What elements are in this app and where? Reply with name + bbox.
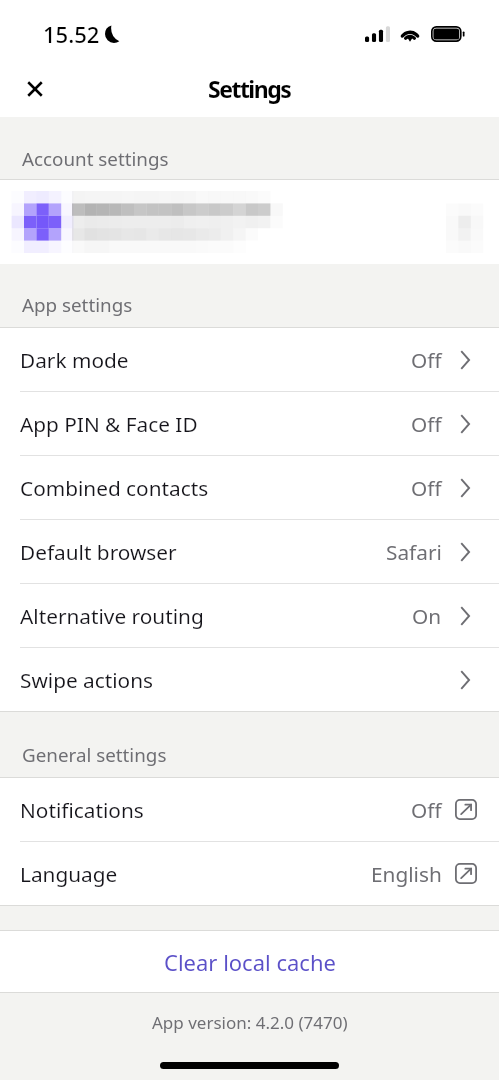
staticText: Notifications — [20, 796, 144, 824]
button[interactable]: Language — [0, 842, 499, 905]
staticText: Account settings — [22, 146, 169, 172]
button[interactable]: Swipe actions — [0, 648, 499, 711]
staticText: Off — [411, 474, 442, 502]
staticText: App PIN & Face ID — [20, 410, 198, 438]
staticText: App version: 4.2.0 (7470) — [152, 1011, 348, 1034]
staticText: Combined contacts — [20, 474, 209, 502]
staticText: Language — [20, 860, 118, 888]
staticText: Clear local cache — [164, 947, 336, 977]
button[interactable]: Combined contacts — [0, 456, 499, 519]
button[interactable] — [0, 180, 499, 264]
staticText: Off — [411, 796, 442, 824]
staticText: Off — [411, 346, 442, 374]
staticText: On — [412, 602, 442, 630]
staticText: General settings — [22, 742, 167, 768]
staticText: Alternative routing — [20, 602, 204, 630]
staticText: Dark mode — [20, 346, 129, 374]
staticText: 15.52 — [43, 19, 100, 49]
staticText: Swipe actions — [20, 666, 153, 694]
button[interactable]: Dark mode — [0, 328, 499, 391]
button[interactable]: Close — [17, 71, 53, 107]
button[interactable]: Notifications — [0, 778, 499, 841]
button[interactable]: App PIN & Face ID — [0, 392, 499, 455]
staticText: App settings — [22, 292, 133, 318]
button[interactable]: Clear local cache — [0, 931, 499, 992]
staticText: Settings — [208, 73, 291, 104]
staticText: English — [371, 860, 442, 888]
staticText: Safari — [386, 538, 442, 566]
button[interactable]: Default browser — [0, 520, 499, 583]
staticText: Default browser — [20, 538, 177, 566]
staticText: Off — [411, 410, 442, 438]
button[interactable]: Alternative routing — [0, 584, 499, 647]
